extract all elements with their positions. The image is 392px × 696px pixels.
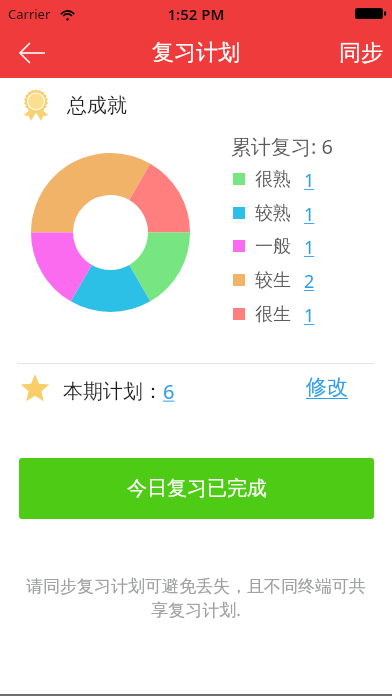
staticText: 今日复习已完成: [127, 476, 267, 501]
button[interactable]: 很熟: [233, 168, 315, 190]
button[interactable]: 同步: [339, 39, 383, 67]
button[interactable]: 较生: [233, 269, 315, 291]
button[interactable]: 一般: [233, 235, 315, 257]
button[interactable]: 修改: [306, 374, 348, 400]
staticText: 1: [304, 303, 315, 325]
button[interactable]: 本期计划：: [63, 378, 175, 405]
button[interactable]: Back: [4, 28, 58, 78]
staticText: 1:52 PM: [0, 4, 392, 24]
staticText: 很熟: [255, 168, 291, 190]
staticText: 1: [304, 202, 315, 224]
staticText: 6: [163, 378, 175, 405]
staticText: 2: [304, 269, 315, 291]
staticText: 1: [304, 168, 315, 190]
staticText: 较熟: [255, 202, 291, 224]
staticText: 一般: [255, 235, 291, 257]
staticText: 请同步复习计划可避免丢失，且不同终端可共享复习计划.: [26, 576, 366, 621]
staticText: 总成就: [67, 93, 127, 118]
staticText: 很生: [255, 303, 291, 325]
staticText: 修改: [306, 374, 348, 400]
staticText: 较生: [255, 269, 291, 291]
button[interactable]: 很生: [233, 303, 315, 325]
staticText: 本期计划：: [63, 379, 163, 404]
staticText: 累计复习: 6: [231, 133, 333, 160]
staticText: 1: [304, 235, 315, 257]
button[interactable]: 今日复习已完成: [19, 458, 374, 519]
staticText: 同步: [339, 39, 383, 67]
staticText: Carrier: [8, 5, 51, 23]
staticText: 复习计划: [152, 39, 240, 67]
button[interactable]: 较熟: [233, 202, 315, 224]
